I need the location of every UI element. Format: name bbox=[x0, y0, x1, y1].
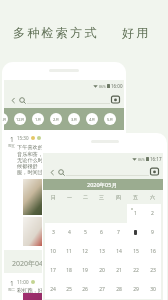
staticText: 12月 bbox=[16, 117, 25, 122]
staticText: 28 bbox=[116, 286, 122, 293]
staticText: 17 bbox=[50, 267, 56, 274]
button[interactable]: 10 bbox=[45, 242, 61, 261]
staticText: 7 bbox=[117, 229, 120, 236]
button[interactable]: 13 bbox=[93, 242, 110, 261]
staticText: 86% bbox=[99, 84, 106, 89]
button[interactable]: 20 bbox=[93, 261, 110, 280]
staticText: 11月 bbox=[2, 117, 7, 122]
staticText: 周五 bbox=[8, 144, 15, 148]
staticText: 86% bbox=[138, 157, 145, 162]
button[interactable]: 24 bbox=[45, 280, 61, 299]
button[interactable]: 2 bbox=[144, 204, 161, 223]
button[interactable]: 1 bbox=[127, 204, 144, 223]
staticText: 10 bbox=[50, 248, 56, 255]
staticText: 1 bbox=[10, 279, 14, 288]
staticText: 23 bbox=[150, 267, 156, 274]
staticText: 5 bbox=[84, 229, 87, 236]
staticText: 2月 bbox=[53, 117, 60, 122]
button[interactable]: Calendar view bbox=[111, 95, 120, 104]
button[interactable]: 6 bbox=[93, 223, 110, 242]
button[interactable]: 11 bbox=[61, 242, 77, 261]
staticText: 三 bbox=[99, 194, 104, 200]
button[interactable]: 28 bbox=[110, 280, 127, 299]
staticText: 3月 bbox=[71, 117, 78, 122]
staticText: 20 bbox=[99, 267, 105, 274]
staticText: 15:30 bbox=[17, 135, 29, 141]
staticText: 13 bbox=[99, 248, 105, 255]
staticText: 16:17 bbox=[150, 156, 162, 162]
button[interactable]: Search bbox=[57, 168, 66, 177]
button[interactable]: 15 bbox=[127, 242, 144, 261]
staticText: 24 bbox=[50, 286, 56, 293]
button[interactable]: 27 bbox=[93, 280, 110, 299]
button[interactable]: 1月 bbox=[32, 113, 44, 125]
button[interactable]: Search bbox=[18, 96, 27, 105]
button[interactable]: 30 bbox=[144, 280, 161, 299]
button[interactable]: 4 bbox=[61, 223, 77, 242]
staticText: 14 bbox=[116, 248, 122, 255]
staticText: 27 bbox=[99, 286, 105, 293]
button[interactable]: 19 bbox=[77, 261, 93, 280]
button[interactable]: 4月 bbox=[86, 113, 98, 125]
staticText: 周二 bbox=[8, 288, 15, 292]
button[interactable]: 12月 bbox=[14, 113, 26, 125]
staticText: 1 bbox=[134, 210, 137, 217]
staticText: 好用 bbox=[122, 25, 151, 40]
staticText: 1 bbox=[10, 135, 14, 144]
staticText: 15 bbox=[133, 248, 139, 255]
button[interactable]: 8 bbox=[127, 223, 144, 242]
staticText: 5月 bbox=[107, 117, 114, 122]
button[interactable]: List view bbox=[150, 167, 159, 176]
button[interactable]: 7 bbox=[110, 223, 127, 242]
button[interactable]: Back bbox=[9, 96, 18, 105]
staticText: 22 bbox=[133, 267, 139, 274]
button[interactable]: 21 bbox=[110, 261, 127, 280]
staticText: 30 bbox=[150, 286, 156, 293]
button[interactable]: 18 bbox=[61, 261, 77, 280]
staticText: 9 bbox=[151, 229, 154, 236]
staticText: 11:00 bbox=[17, 279, 29, 285]
staticText: 8 bbox=[134, 229, 137, 236]
button[interactable]: 3月 bbox=[68, 113, 80, 125]
button[interactable]: 17 bbox=[45, 261, 61, 280]
button[interactable]: 25 bbox=[61, 280, 77, 299]
button[interactable]: 9 bbox=[144, 223, 161, 242]
staticText: 16:00 bbox=[111, 83, 123, 89]
button[interactable]: 5 bbox=[77, 223, 93, 242]
staticText: 25 bbox=[66, 286, 72, 293]
staticText: 11 bbox=[66, 248, 72, 255]
staticText: 五 bbox=[133, 194, 138, 200]
staticText: 多种检索方式 bbox=[13, 25, 99, 40]
button[interactable]: 26 bbox=[77, 280, 93, 299]
button[interactable]: 2月 bbox=[50, 113, 62, 125]
staticText: 四 bbox=[116, 194, 121, 200]
staticText: 29 bbox=[133, 286, 139, 293]
button[interactable]: 3 bbox=[45, 223, 61, 242]
staticText: 六 bbox=[150, 194, 155, 200]
staticText: 26 bbox=[82, 286, 88, 293]
button[interactable]: 29 bbox=[127, 280, 144, 299]
button[interactable]: 22 bbox=[127, 261, 144, 280]
button[interactable]: 5月 bbox=[104, 113, 116, 125]
staticText: 4月 bbox=[89, 117, 96, 122]
button[interactable]: 12 bbox=[77, 242, 93, 261]
staticText: 彩虹跑，好开心 bbox=[17, 287, 54, 294]
staticText: 3 bbox=[52, 229, 55, 236]
staticText: 21 bbox=[116, 267, 122, 274]
staticText: 6 bbox=[100, 229, 103, 236]
staticText: 2020年04月 bbox=[12, 259, 51, 269]
staticText: 一 bbox=[67, 194, 72, 200]
button[interactable]: 23 bbox=[144, 261, 161, 280]
staticText: 2 bbox=[151, 210, 154, 217]
button[interactable]: 14 bbox=[110, 242, 127, 261]
button[interactable]: 11月 bbox=[2, 113, 8, 125]
button[interactable]: 16 bbox=[144, 242, 161, 261]
staticText: 2020年05月 bbox=[87, 181, 117, 189]
button[interactable]: Back bbox=[48, 168, 57, 177]
staticText: 1月 bbox=[35, 117, 42, 122]
